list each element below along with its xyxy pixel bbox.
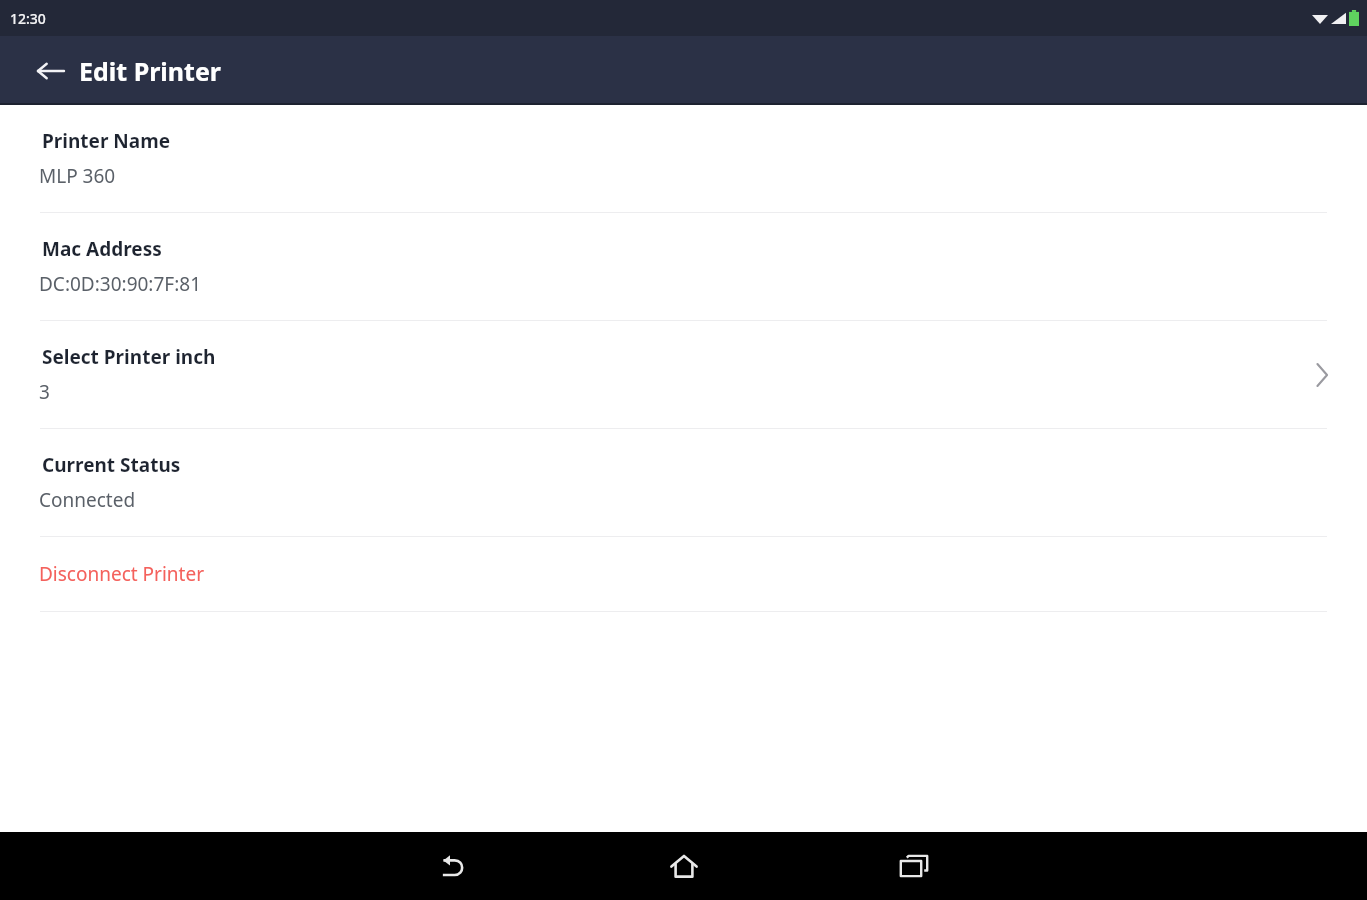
button[interactable]: Open printer inch selector: [1305, 358, 1339, 392]
staticText: Mac Address: [42, 236, 162, 262]
staticText: MLP 360: [39, 163, 116, 189]
button[interactable]: Back: [30, 51, 70, 91]
staticText: Edit Printer: [79, 54, 222, 88]
staticText: Select Printer inch: [42, 344, 216, 370]
staticText: 3: [39, 379, 50, 405]
button[interactable]: Select Printer inch: [0, 321, 1367, 428]
button[interactable]: Mac Address: [0, 213, 1367, 320]
staticText: DC:0D:30:90:7F:81: [39, 271, 202, 297]
staticText: Printer Name: [42, 128, 171, 154]
button[interactable]: Printer Name: [0, 105, 1367, 212]
button[interactable]: Recent apps: [882, 834, 946, 898]
staticText: Connected: [39, 487, 136, 513]
button[interactable]: Home: [652, 834, 716, 898]
staticText: 12:30: [10, 9, 46, 28]
staticText: Disconnect Printer: [39, 561, 205, 587]
button[interactable]: Disconnect Printer: [0, 537, 1367, 611]
button[interactable]: Current Status: [0, 429, 1367, 536]
staticText: Current Status: [42, 452, 181, 478]
button[interactable]: Back: [421, 834, 485, 898]
